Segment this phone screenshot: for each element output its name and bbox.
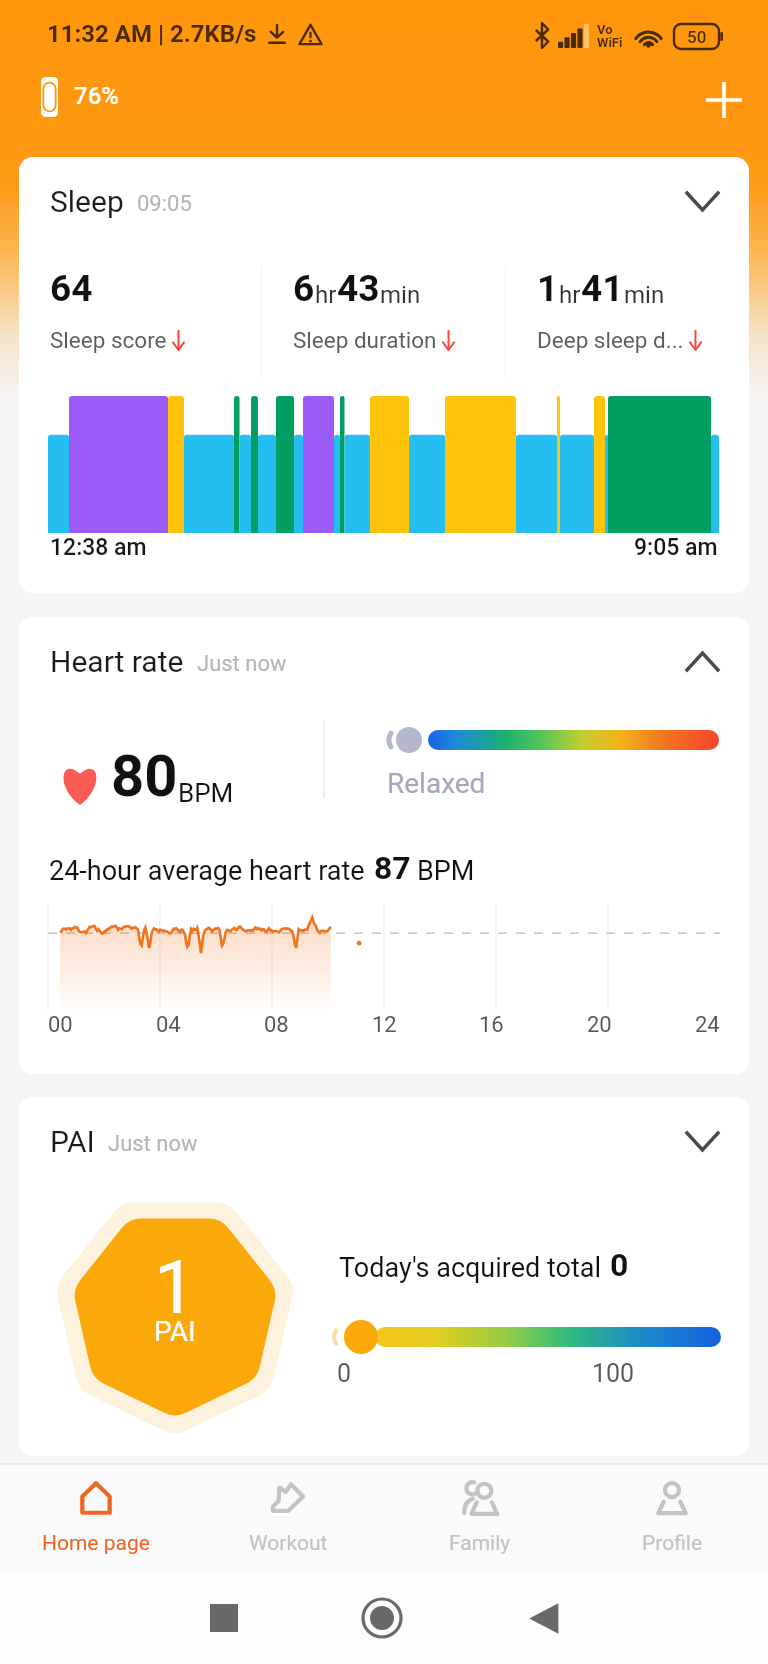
staticText: 6 [293,267,315,310]
button[interactable]: PAI [19,1097,749,1456]
button[interactable]: Collapse [676,635,728,687]
staticText: 08 [264,1012,289,1038]
staticText: hr [559,281,581,309]
staticText: 0 [337,1359,352,1388]
staticText: BPM [178,778,234,808]
staticText: Just now [197,651,287,677]
button[interactable]: Add device [696,72,752,128]
staticText: 41 [581,267,624,310]
button[interactable]: Expand [676,1115,728,1167]
staticText: 1 [537,267,559,310]
staticText: Today's acquired total [339,1252,601,1284]
button[interactable]: Family [384,1463,576,1570]
staticText: Family [449,1531,511,1556]
staticText: min [624,281,665,309]
staticText: Profile [642,1531,703,1556]
staticText: 12:38 am [50,534,147,561]
staticText: Sleep score [50,327,167,353]
button[interactable]: Sleep [19,157,749,593]
button[interactable]: Back [518,1593,568,1643]
staticText: PAI [154,1315,196,1348]
button[interactable]: Workout [192,1463,384,1570]
staticText: 100 [592,1359,635,1388]
staticText: 24-hour average heart rate [49,855,365,887]
staticText: 16 [479,1012,504,1038]
button[interactable]: Expand [676,175,728,227]
staticText: 43 [337,267,380,310]
button[interactable]: Home [357,1593,407,1643]
staticText: Workout [249,1531,328,1556]
staticText: 1 [154,1244,196,1331]
staticText: 11:32 AM | 2.7KB/s [47,20,257,48]
staticText: Just now [108,1131,198,1157]
staticText: BPM [417,855,475,887]
button[interactable]: Heart rate [19,617,749,1074]
button[interactable]: Recents [199,1593,249,1643]
staticText: 00 [48,1012,73,1038]
staticText: 87 [374,849,411,887]
button[interactable]: Profile [576,1463,768,1570]
button[interactable]: Home page [0,1463,192,1570]
staticText: 50 [687,27,707,47]
staticText: Sleep duration [293,327,437,353]
staticText: min [380,281,421,309]
staticText: Relaxed [387,767,486,800]
staticText: 76% [74,82,119,110]
staticText: 20 [587,1012,612,1038]
staticText: 24 [695,1012,720,1038]
staticText: Heart rate [50,644,184,679]
staticText: 9:05 am [634,534,718,561]
staticText: hr [315,281,337,309]
staticText: Vo [597,22,613,37]
staticText: 0 [610,1246,629,1284]
staticText: PAI [50,1124,95,1159]
staticText: 09:05 [137,191,192,217]
staticText: WiFi [597,35,623,50]
staticText: Deep sleep d... [537,327,684,353]
staticText: 12 [372,1012,397,1038]
staticText: Sleep [50,184,124,219]
staticText: 80 [111,742,178,810]
staticText: 64 [50,267,93,310]
staticText: Home page [42,1531,150,1556]
staticText: 04 [156,1012,181,1038]
